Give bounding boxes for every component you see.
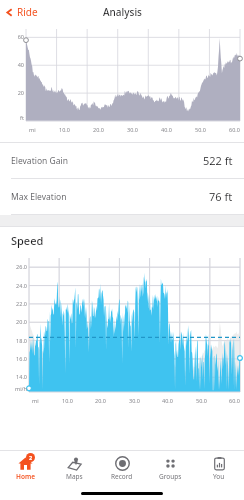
- button[interactable]: Record: [99, 454, 145, 483]
- staticText: 40: [0, 61, 24, 68]
- staticText: mi/h: [0, 385, 27, 392]
- staticText: 76 ft: [209, 189, 233, 204]
- staticText: 50.0: [196, 397, 207, 404]
- staticText: Analysis: [103, 5, 142, 19]
- staticText: 20.0: [93, 126, 104, 133]
- staticText: 20.0: [0, 318, 27, 325]
- staticText: 16.0: [0, 355, 27, 362]
- staticText: 20: [0, 89, 24, 96]
- staticText: mi: [29, 126, 36, 133]
- staticText: 10.0: [59, 126, 70, 133]
- staticText: 30.0: [129, 397, 140, 404]
- staticText: 10.0: [62, 397, 73, 404]
- staticText: 18.0: [0, 337, 27, 344]
- staticText: 522 ft: [203, 153, 233, 168]
- button[interactable]: Maps: [51, 454, 97, 483]
- staticText: You: [213, 472, 225, 481]
- staticText: 40.0: [162, 397, 173, 404]
- staticText: Speed: [11, 233, 44, 248]
- staticText: Home: [16, 472, 35, 481]
- staticText: 40.0: [161, 126, 172, 133]
- button[interactable]: Max Elevation: [0, 179, 244, 215]
- staticText: Ride: [17, 5, 38, 19]
- staticText: Record: [111, 472, 133, 481]
- staticText: mi: [32, 397, 39, 404]
- staticText: 14.0: [0, 373, 27, 380]
- staticText: 20.0: [95, 397, 106, 404]
- button[interactable]: Ride: [0, 2, 46, 22]
- button[interactable]: You: [196, 454, 242, 483]
- staticText: Max Elevation: [11, 191, 209, 203]
- staticText: 60.0: [229, 126, 240, 133]
- button[interactable]: Home: [2, 454, 48, 483]
- button[interactable]: Elevation Gain: [0, 143, 244, 179]
- staticText: Groups: [159, 472, 182, 481]
- staticText: 22.0: [0, 300, 27, 307]
- staticText: 2: [29, 454, 33, 461]
- staticText: 26.0: [0, 263, 27, 270]
- staticText: Maps: [66, 472, 83, 481]
- staticText: 30.0: [127, 126, 138, 133]
- staticText: 60.0: [229, 397, 240, 404]
- staticText: 24.0: [0, 282, 27, 289]
- staticText: Elevation Gain: [11, 155, 203, 167]
- staticText: 60: [0, 33, 24, 40]
- staticText: ft: [0, 114, 24, 121]
- staticText: 50.0: [195, 126, 206, 133]
- button[interactable]: Groups: [147, 454, 193, 483]
